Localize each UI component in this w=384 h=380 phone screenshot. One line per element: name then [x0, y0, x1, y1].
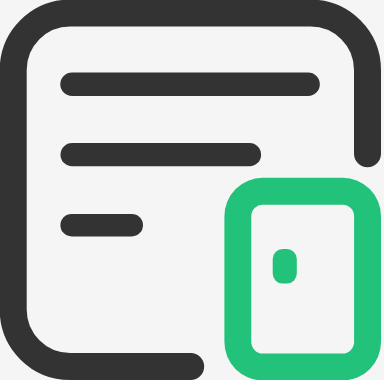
button[interactable]: Document and card reader icon [0, 0, 384, 380]
